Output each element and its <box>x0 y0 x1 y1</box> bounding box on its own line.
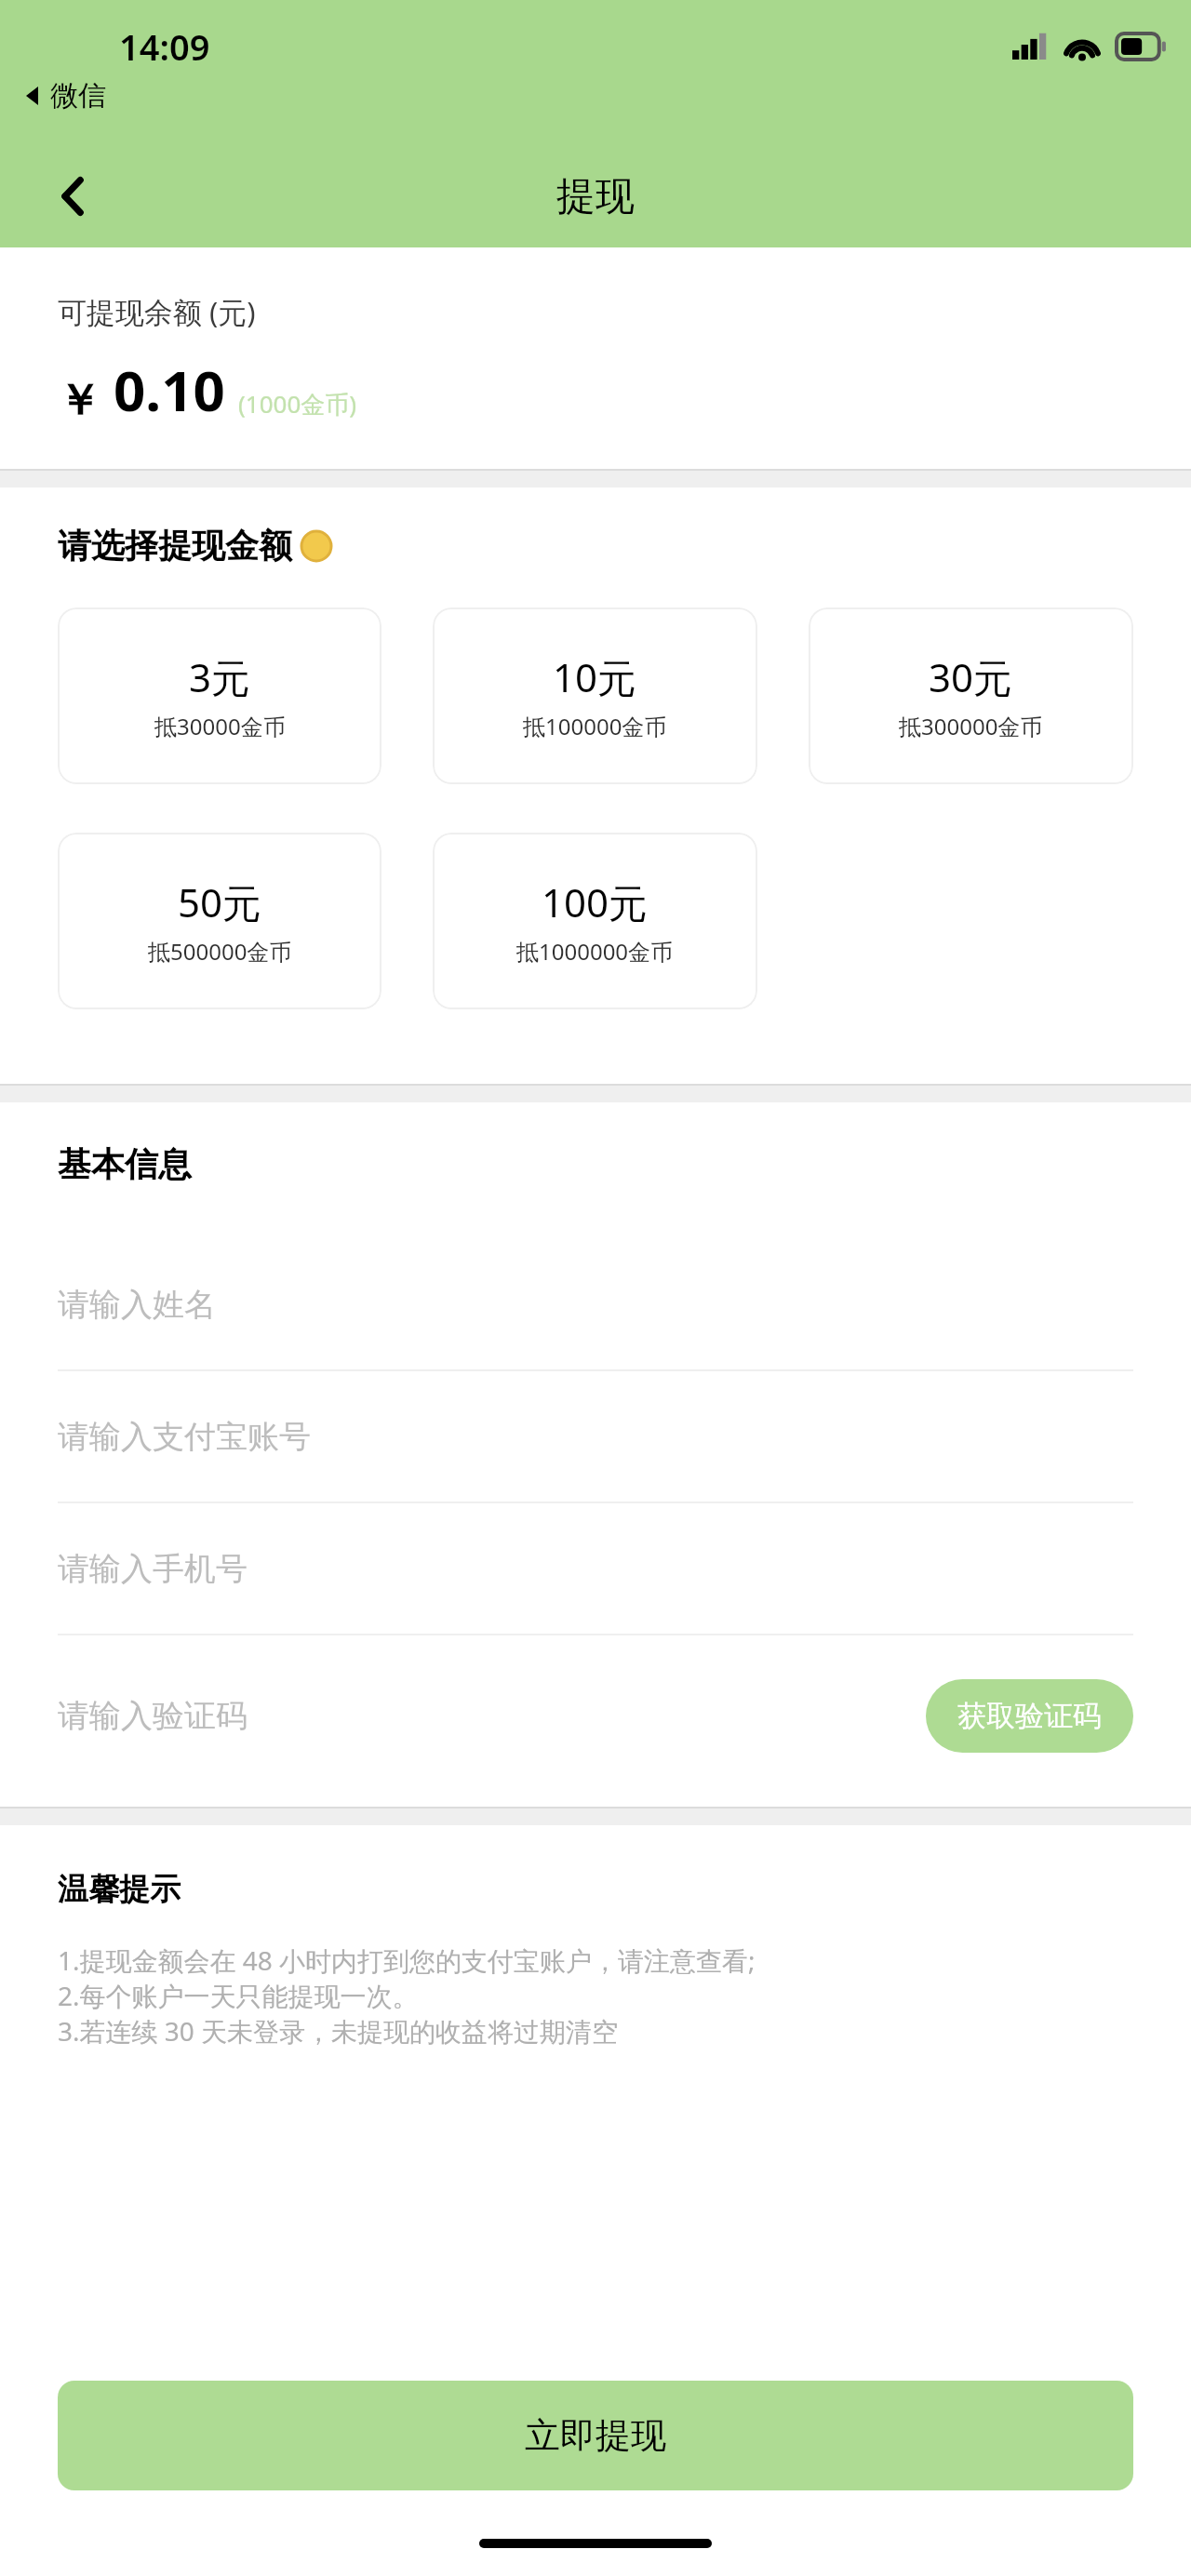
staticText: 1.提现金额会在 48 小时内打到您的支付宝账户，请注意查看; <box>58 1942 756 1978</box>
button[interactable]: 请输入手机号 <box>58 1503 1133 1635</box>
staticText: 请输入手机号 <box>58 1549 248 1589</box>
staticText: 温馨提示 <box>58 1870 181 1909</box>
staticText: 0.10 <box>114 352 225 428</box>
staticText: 2.每个账户一天只能提现一次。 <box>58 1978 419 2013</box>
button[interactable]: 100元 <box>433 833 757 1009</box>
button[interactable]: 50元 <box>58 833 381 1009</box>
staticText: 可提现余额 (元) <box>58 292 256 331</box>
staticText: 抵500000金币 <box>148 936 292 967</box>
staticText: 抵30000金币 <box>154 711 286 741</box>
staticText: 100元 <box>542 875 649 928</box>
button[interactable]: 3元 <box>58 607 381 784</box>
staticText: 获取验证码 <box>957 1698 1102 1734</box>
staticText: 14:09 <box>119 22 210 71</box>
staticText: 基本信息 <box>58 1143 192 1185</box>
staticText: 抵100000金币 <box>523 711 667 741</box>
button[interactable]: 请输入姓名 <box>58 1239 1133 1371</box>
staticText: (1000金币) <box>238 387 357 420</box>
staticText: 30元 <box>929 650 1013 703</box>
button[interactable]: 获取验证码 <box>926 1679 1133 1753</box>
button[interactable]: 立即提现 <box>58 2381 1133 2490</box>
staticText: 微信 <box>50 78 106 113</box>
staticText: 请输入支付宝账号 <box>58 1417 311 1457</box>
staticText: 3.若连续 30 天未登录，未提现的收益将过期清空 <box>58 2013 619 2049</box>
staticText: 提现 <box>556 172 635 221</box>
staticText: ￥ <box>58 374 100 428</box>
staticText: 抵1000000金币 <box>516 936 674 967</box>
button[interactable]: 请输入支付宝账号 <box>58 1371 1133 1503</box>
staticText: 50元 <box>178 875 262 928</box>
staticText: 3元 <box>189 650 251 703</box>
staticText: 请输入验证码 <box>58 1696 248 1736</box>
staticText: 请选择提现金额 <box>58 525 292 567</box>
button[interactable]: 10元 <box>433 607 757 784</box>
staticText: 10元 <box>553 650 637 703</box>
staticText: 抵300000金币 <box>899 711 1043 741</box>
button[interactable]: 30元 <box>809 607 1133 784</box>
staticText: 立即提现 <box>525 2413 666 2458</box>
staticText: 请输入姓名 <box>58 1285 216 1325</box>
button[interactable]: Back <box>47 169 100 223</box>
